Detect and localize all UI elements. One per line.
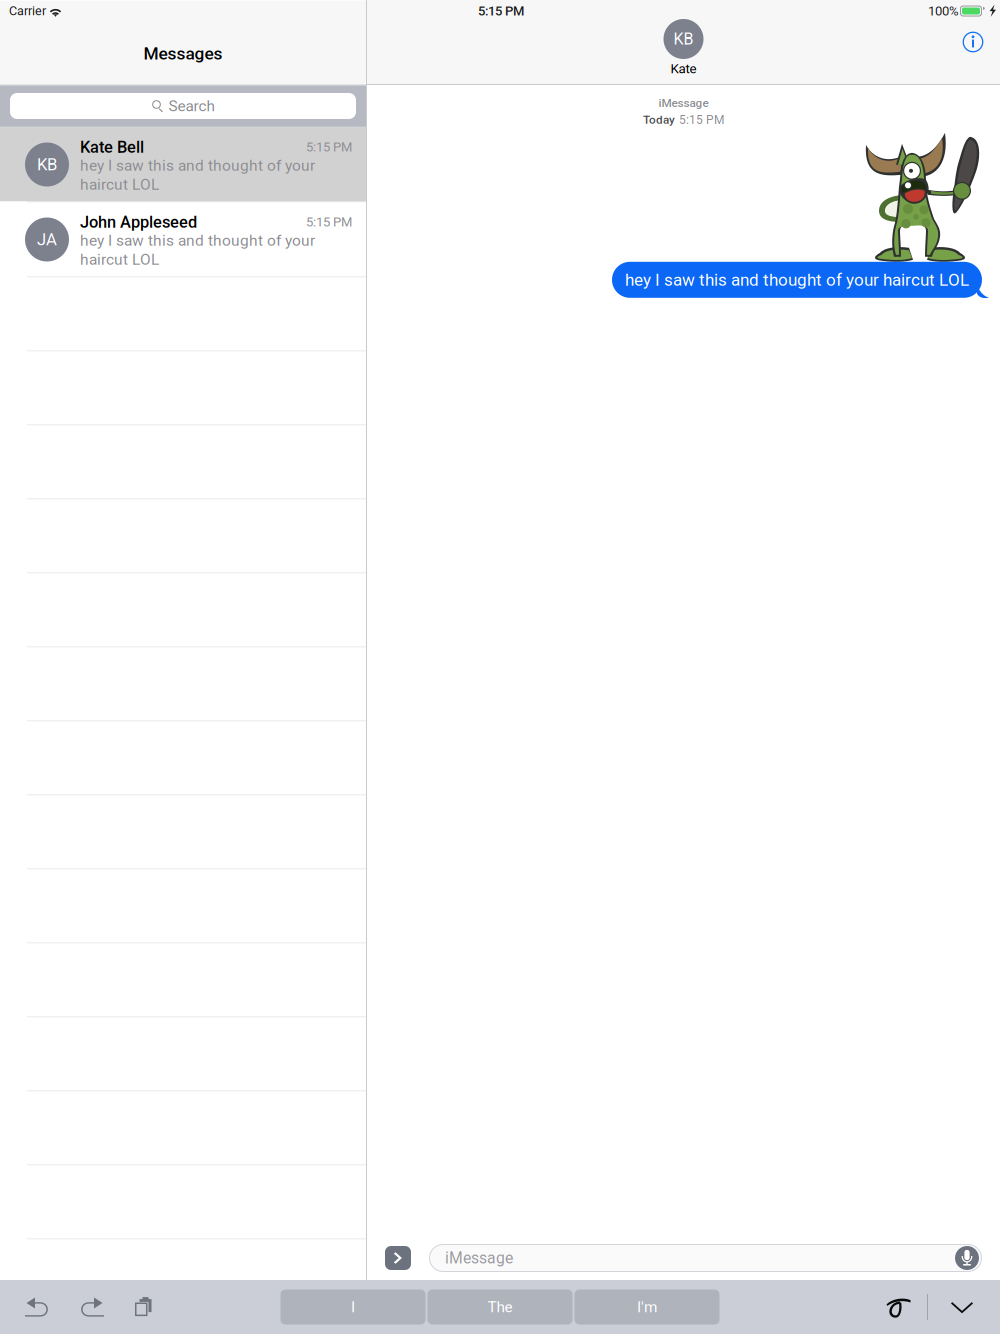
staticText: The (487, 1298, 512, 1316)
button[interactable]: App drawer (385, 1246, 411, 1270)
button[interactable]: KB (0, 127, 366, 201)
button[interactable]: The (427, 1289, 572, 1324)
staticText: John Appleseed (80, 212, 197, 232)
button[interactable]: Paste (130, 1290, 156, 1324)
staticText: 5:15 PM (306, 214, 352, 230)
button[interactable]: KB (663, 19, 703, 77)
staticText: hey I saw this and thought of your (80, 156, 315, 175)
staticText: hey I saw this and thought of your (80, 231, 315, 250)
staticText: Messages (143, 43, 222, 64)
staticText: iMessage (658, 96, 708, 110)
staticText: Search (168, 97, 214, 115)
button[interactable]: Dismiss keyboard (950, 1290, 974, 1324)
staticText: Kate Bell (80, 137, 144, 157)
staticText: I (351, 1298, 355, 1316)
button[interactable]: Details (962, 31, 984, 53)
staticText: KB (673, 30, 693, 48)
button[interactable]: iMessage (429, 1244, 982, 1272)
staticText: haircut LOL (80, 250, 159, 269)
button[interactable]: Undo (18, 1290, 58, 1324)
staticText: Kate (670, 61, 696, 77)
staticText: I'm (637, 1298, 657, 1316)
button[interactable]: Search (10, 93, 356, 119)
staticText: KB (37, 155, 57, 174)
button[interactable]: Redo (71, 1290, 111, 1324)
button[interactable]: I (280, 1289, 425, 1324)
staticText: iMessage (445, 1249, 513, 1267)
staticText: 100% (928, 3, 959, 19)
button[interactable]: Scribble (881, 1290, 917, 1324)
staticText: haircut LOL (80, 175, 159, 194)
staticText: 5:15 PM (306, 139, 352, 155)
staticText: Carrier (9, 4, 46, 18)
button[interactable]: I'm (574, 1289, 719, 1324)
staticText: 5:15 PM (679, 113, 724, 127)
staticText: hey I saw this and thought of your hairc… (625, 270, 969, 290)
staticText: Today (643, 113, 675, 127)
button[interactable]: JA (0, 202, 366, 276)
staticText: 5:15 PM (478, 3, 524, 19)
staticText: JA (37, 230, 57, 249)
